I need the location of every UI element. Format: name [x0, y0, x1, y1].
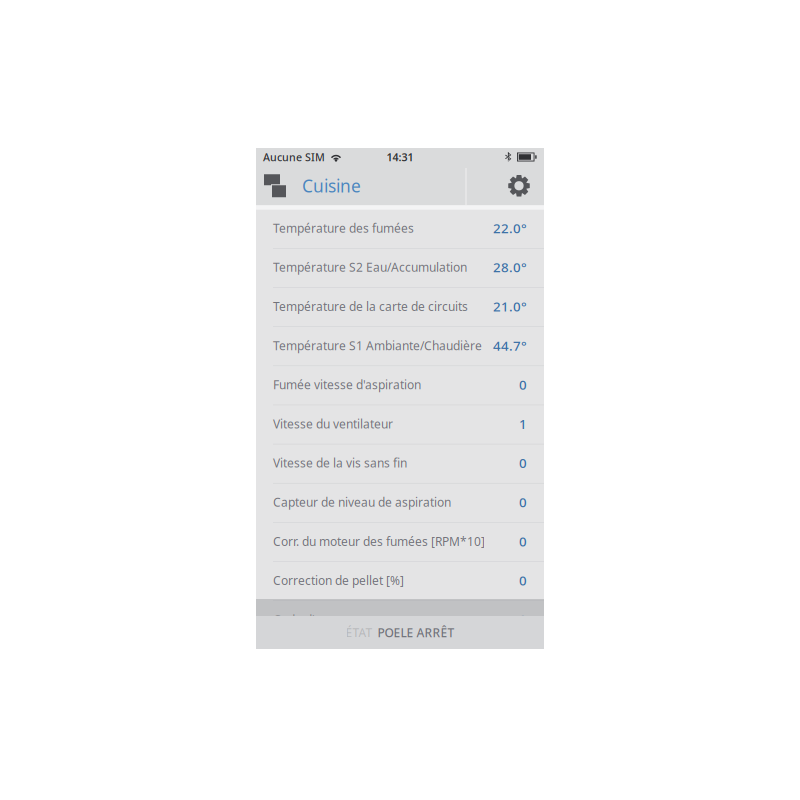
staticText: 14:31 [386, 150, 413, 164]
staticText: Code d'erreur [273, 612, 350, 627]
button[interactable]: Température S2 Eau/Accumulation [256, 249, 544, 288]
staticText: Aucune SIM [263, 150, 325, 164]
staticText: Température des fumées [273, 220, 414, 236]
button[interactable]: Température des fumées [256, 209, 544, 249]
staticText: Température S1 Ambiante/Chaudière [273, 337, 482, 353]
button[interactable]: Réglages [494, 166, 544, 205]
staticText: Fumée vitesse d'aspiration [273, 377, 421, 393]
staticText: POELE ARRÊT [377, 624, 454, 640]
staticText: Capteur de niveau de aspiration [273, 494, 451, 510]
staticText: 28.0° [493, 258, 527, 276]
button[interactable]: Température de la carte de circuits [256, 288, 544, 327]
staticText: Corr. du moteur des fumées [RPM*10] [273, 533, 485, 549]
staticText: ÉTAT [345, 624, 372, 640]
button[interactable]: Vitesse du ventilateur [256, 405, 544, 444]
staticText: Vitesse du ventilateur [273, 416, 393, 432]
staticText: 44.7° [493, 337, 527, 354]
staticText: Correction de pellet [%] [273, 572, 404, 588]
staticText: 1 [519, 415, 527, 433]
staticText: Température S2 Eau/Accumulation [273, 259, 467, 275]
staticText: 21.0° [493, 297, 527, 315]
staticText: Cuisine [302, 174, 361, 197]
staticText: 0 [519, 376, 527, 393]
button[interactable]: Corr. du moteur des fumées [RPM*10] [256, 523, 544, 562]
staticText: Température de la carte de circuits [273, 298, 468, 314]
staticText: 22.0° [493, 219, 527, 237]
staticText: 0 [519, 454, 527, 472]
staticText: 0 [519, 493, 527, 511]
button[interactable]: Vitesse de la vis sans fin [256, 444, 544, 483]
staticText: 0 [519, 532, 527, 550]
button[interactable]: Capteur de niveau de aspiration [256, 484, 544, 523]
button[interactable]: Code d'erreur [256, 601, 544, 640]
staticText: 0 [519, 611, 527, 628]
staticText: 0 [519, 571, 527, 589]
staticText: Vitesse de la vis sans fin [273, 455, 407, 471]
button[interactable]: Correction de pellet [%] [256, 562, 544, 601]
button[interactable]: Cuisine [256, 166, 371, 205]
button[interactable]: Fumée vitesse d'aspiration [256, 366, 544, 405]
button[interactable]: Température S1 Ambiante/Chaudière [256, 327, 544, 366]
